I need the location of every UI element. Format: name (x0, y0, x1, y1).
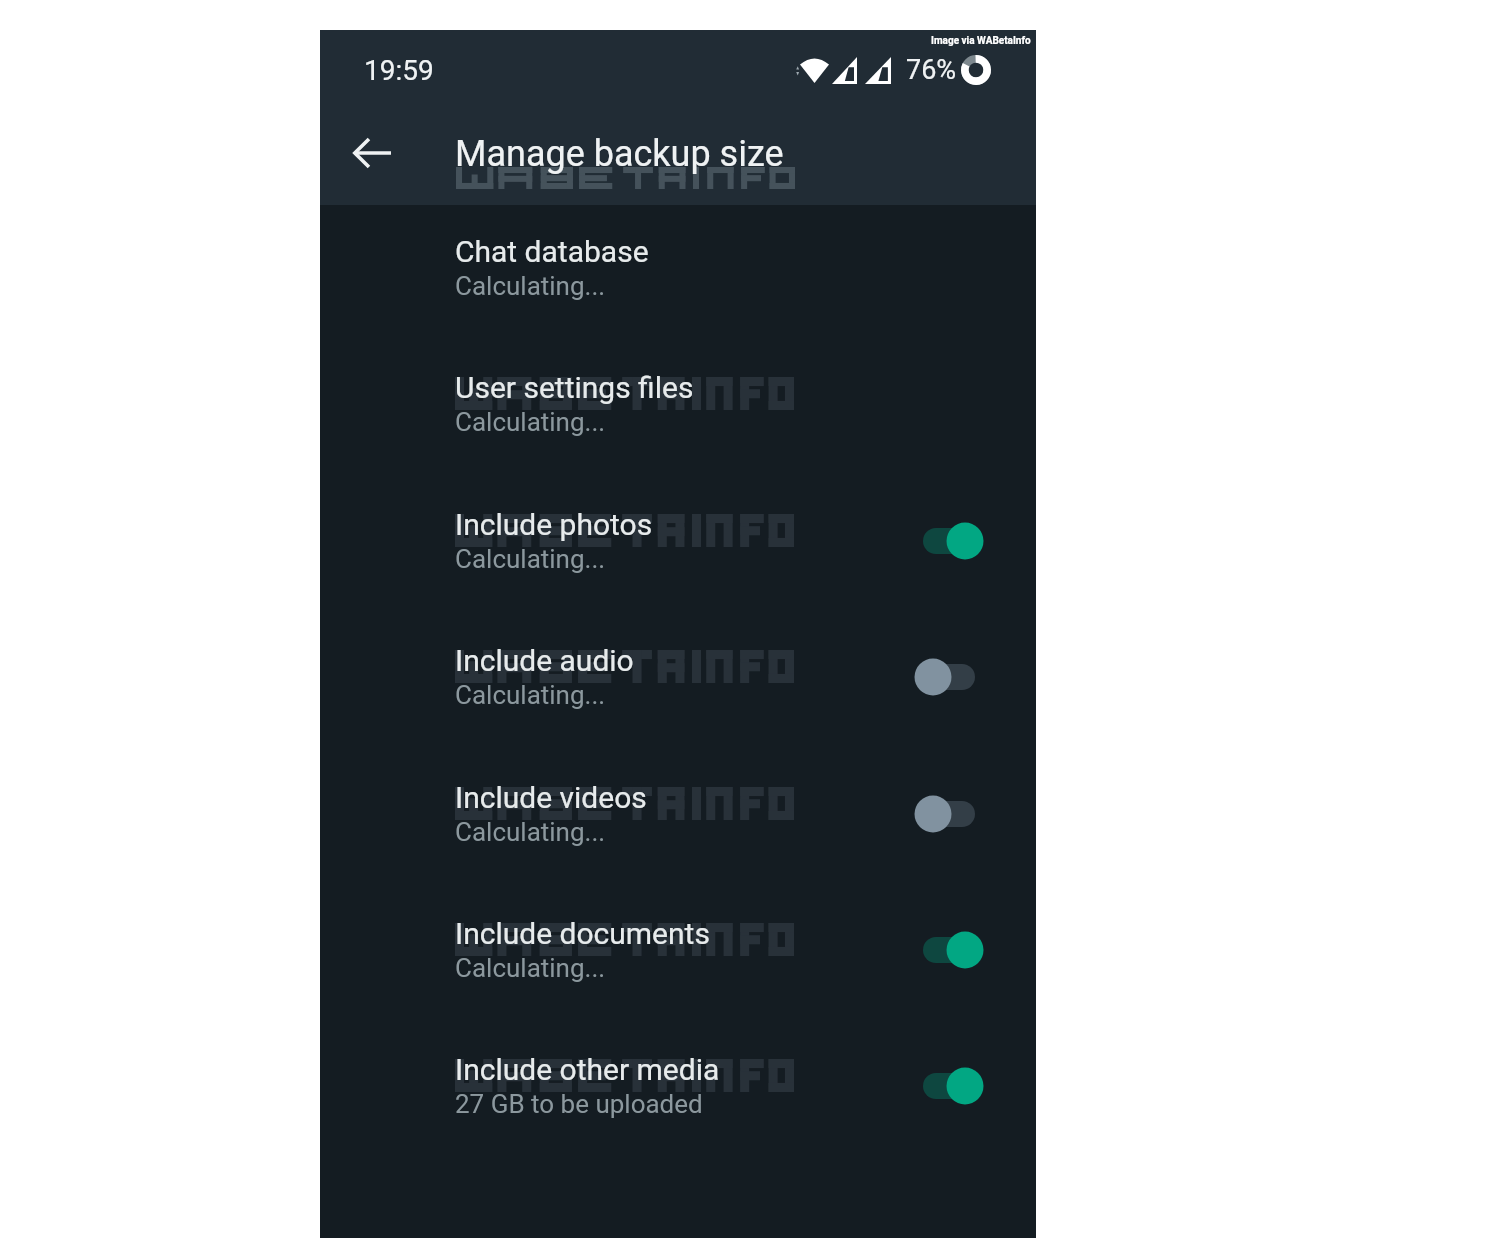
staticText: Include audio (455, 643, 634, 678)
staticText: Calculating... (455, 407, 606, 437)
staticText: Calculating... (455, 953, 606, 983)
staticText: User settings files (455, 370, 694, 405)
staticText: Image via WABetaInfo (931, 35, 1031, 47)
button[interactable]: Include other media, on (894, 1046, 994, 1126)
button[interactable]: Include documents, on (894, 910, 994, 990)
button[interactable]: Include videos (320, 779, 1036, 915)
button[interactable]: User settings files (320, 369, 1036, 505)
staticText: Include videos (455, 780, 647, 815)
staticText: 27 GB to be uploaded (455, 1089, 703, 1119)
button[interactable]: Include documents (320, 915, 1036, 1051)
button[interactable]: Include audio, off (894, 637, 994, 717)
button[interactable]: Chat database (320, 233, 1036, 369)
button[interactable]: Include videos, off (894, 774, 994, 854)
staticText: Calculating... (455, 544, 606, 574)
button[interactable]: Include photos (320, 506, 1036, 642)
button[interactable]: Include other media (320, 1051, 1036, 1187)
staticText: Include documents (455, 916, 710, 951)
staticText: Chat database (455, 234, 649, 269)
button[interactable]: Back (343, 124, 400, 181)
staticText: Calculating... (455, 271, 606, 301)
staticText: Include photos (455, 507, 653, 542)
staticText: Include other media (455, 1052, 720, 1087)
staticText: Calculating... (455, 680, 606, 710)
button[interactable]: Include photos, on (894, 501, 994, 581)
staticText: 76% (906, 54, 957, 86)
staticText: Calculating... (455, 817, 606, 847)
button[interactable]: Include audio (320, 642, 1036, 778)
staticText: Manage backup size (455, 133, 784, 175)
staticText: 19:59 (364, 54, 434, 87)
